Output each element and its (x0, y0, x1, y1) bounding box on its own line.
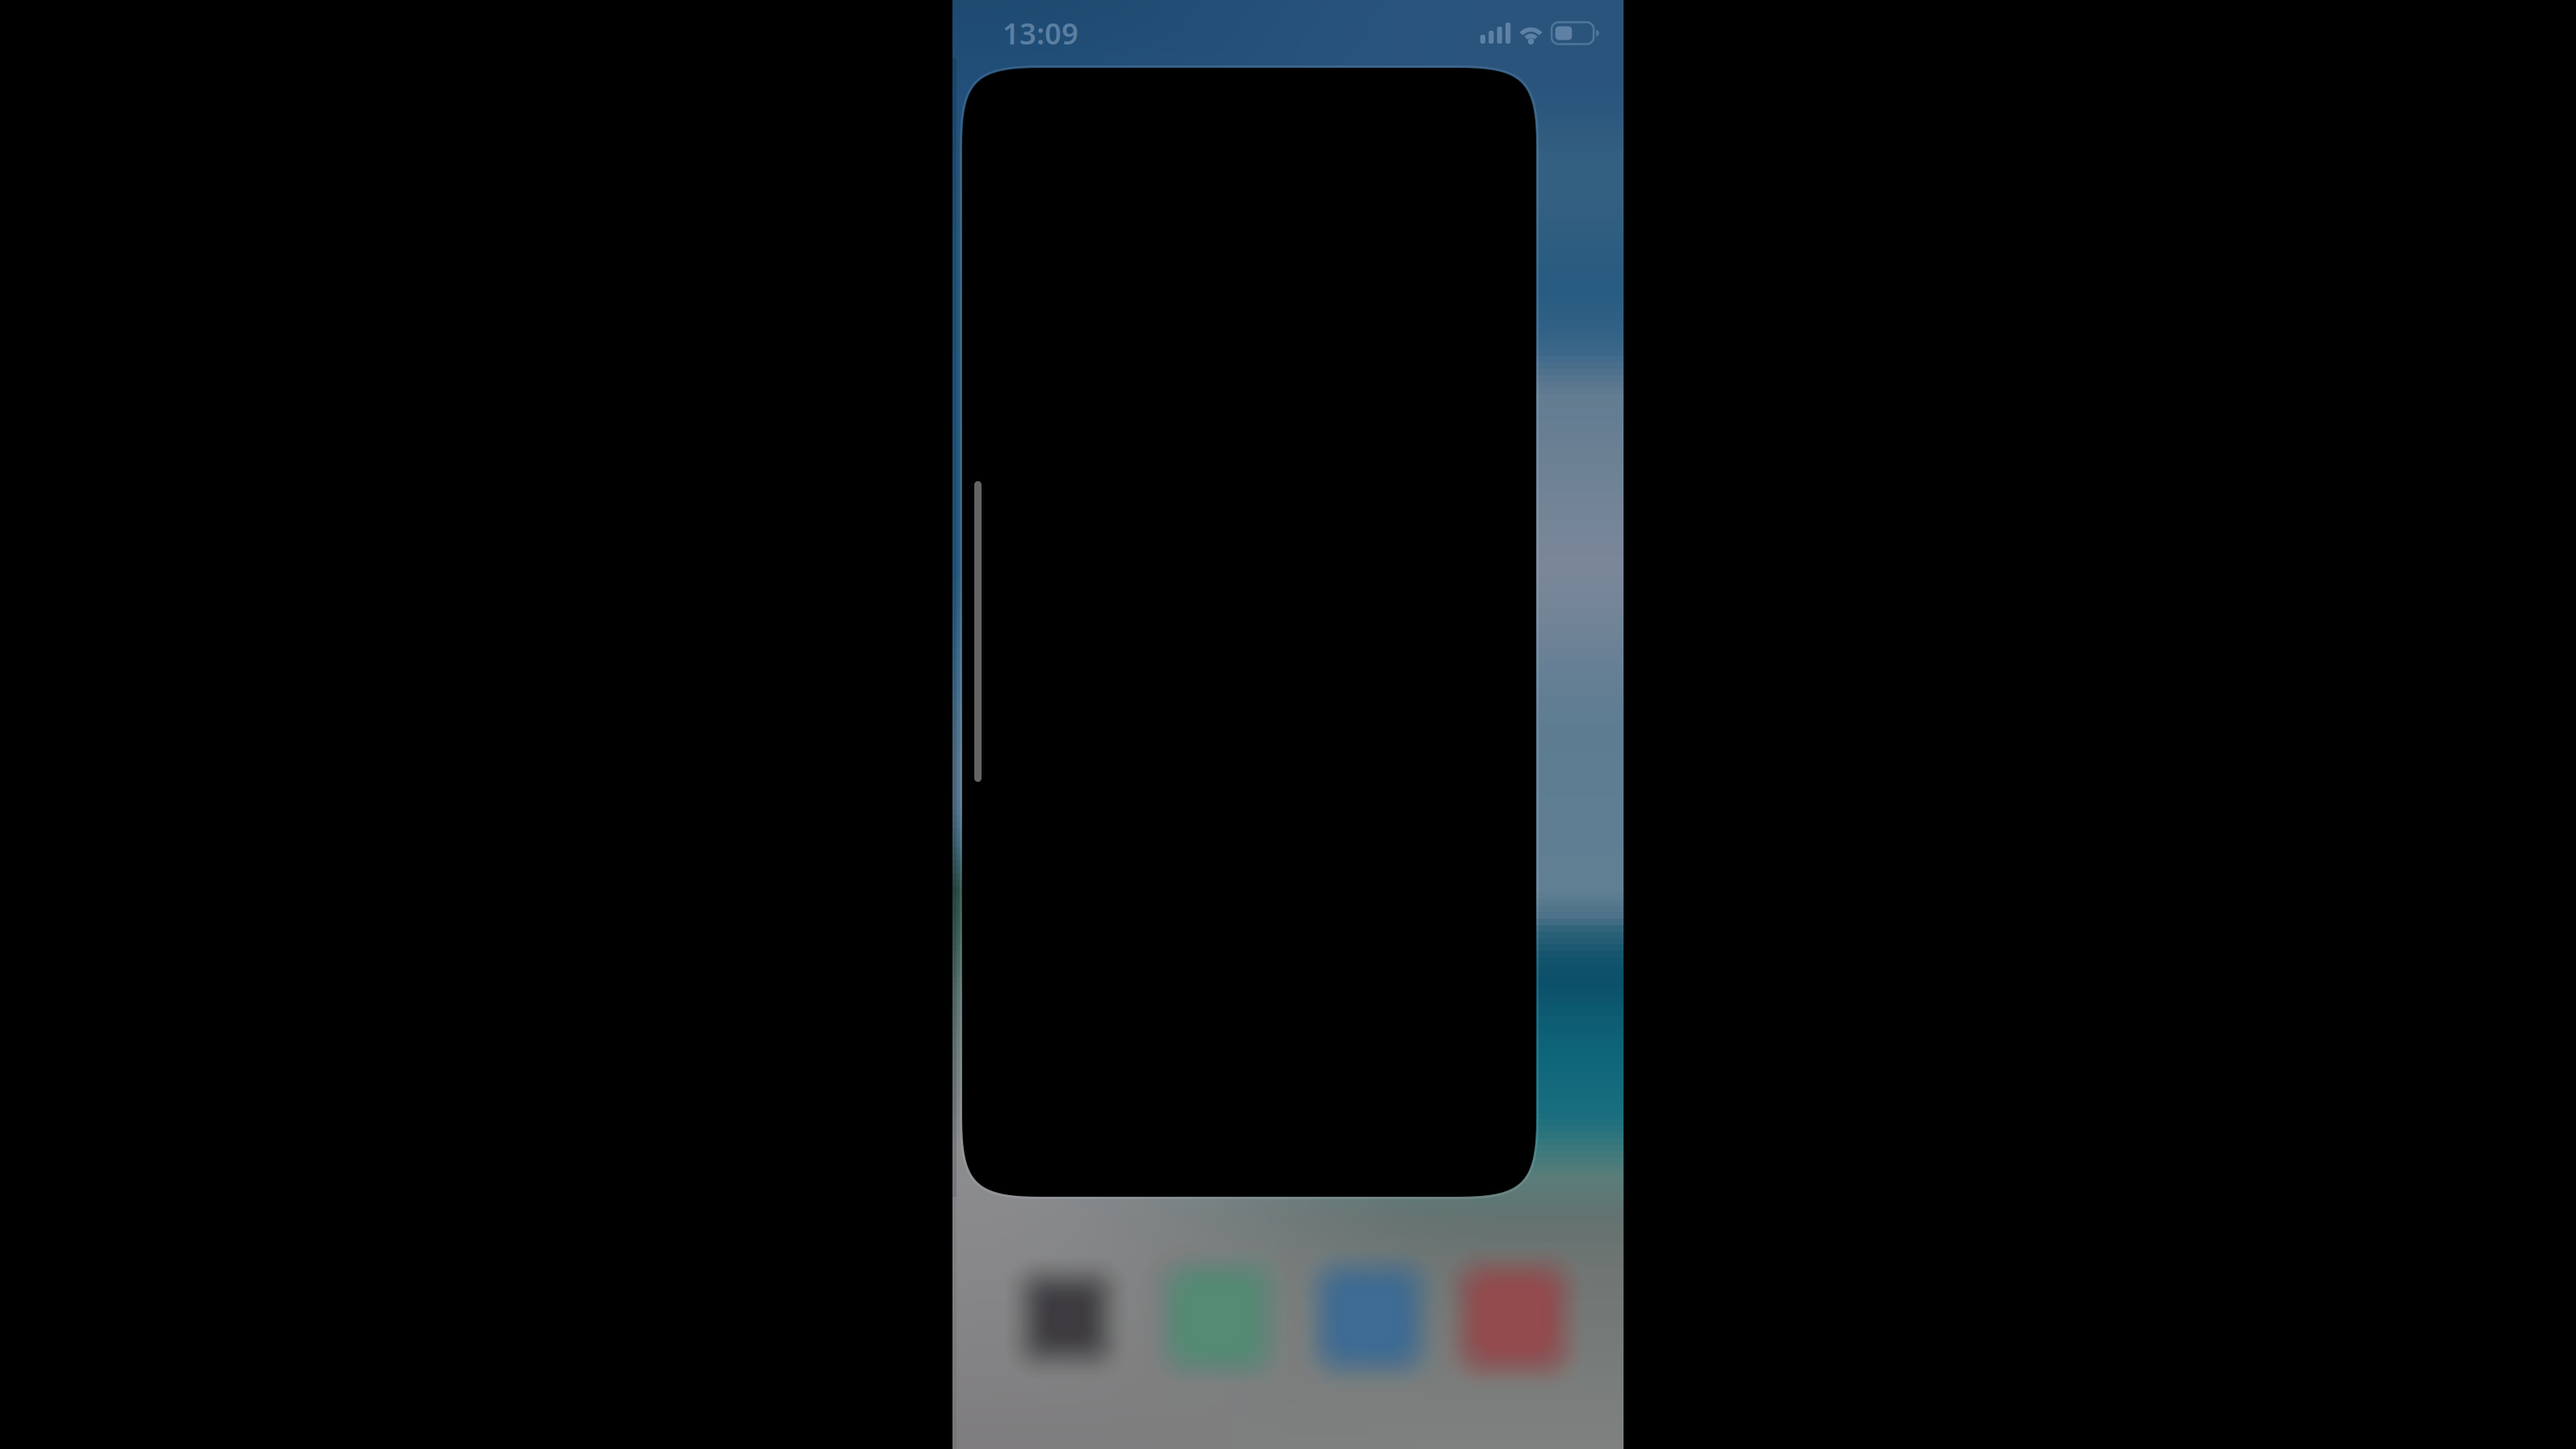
staticText: 13:09 (1003, 14, 1079, 52)
button[interactable]: App snapshot (962, 68, 1536, 1197)
button[interactable]: Messages (1141, 1241, 1294, 1395)
button[interactable]: Music (1437, 1241, 1590, 1395)
button[interactable]: Phone (1003, 1254, 1130, 1382)
button[interactable]: Safari (1294, 1243, 1445, 1393)
